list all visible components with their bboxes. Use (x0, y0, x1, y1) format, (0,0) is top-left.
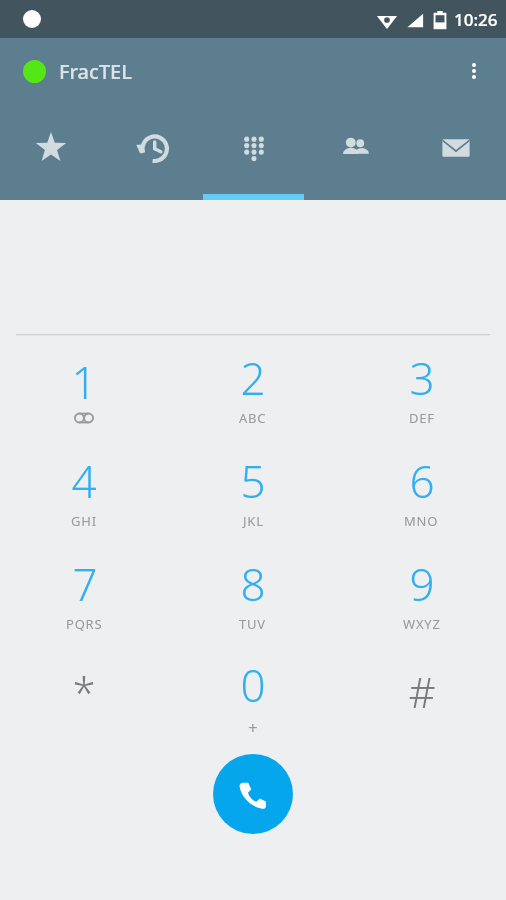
button[interactable]: 3 (337, 336, 506, 439)
staticText: 7 (72, 554, 98, 614)
button[interactable]: 0 (168, 645, 337, 748)
button[interactable]: 8 (168, 542, 337, 645)
button[interactable]: 5 (168, 439, 337, 542)
button[interactable]: Recents (102, 104, 203, 200)
button[interactable]: 7 (0, 542, 168, 645)
staticText: 6 (409, 451, 435, 511)
staticText: ABC (239, 409, 267, 427)
button[interactable]: 2 (168, 336, 337, 439)
button[interactable]: More options (450, 47, 498, 95)
button[interactable]: Contacts (304, 104, 405, 200)
staticText: 1 (71, 352, 97, 412)
button[interactable]: 1 (0, 336, 168, 439)
staticText: 4 (71, 451, 97, 511)
button[interactable]: 4 (0, 439, 168, 542)
button[interactable]: Voicemail (405, 104, 506, 200)
button[interactable]: 6 (337, 439, 506, 542)
staticText: 8 (240, 554, 266, 614)
staticText: 2 (240, 348, 266, 408)
staticText: JKL (243, 512, 264, 530)
staticText: TUV (239, 615, 266, 633)
staticText: DEF (409, 409, 435, 427)
staticText: 9 (409, 554, 435, 614)
staticText: 3 (409, 348, 435, 408)
staticText: MNO (404, 512, 439, 530)
staticText: PQRS (66, 615, 103, 633)
staticText: 5 (240, 451, 266, 511)
button[interactable]: # (337, 645, 506, 748)
button[interactable]: * (0, 645, 168, 748)
staticText: * (72, 663, 96, 720)
button[interactable]: Call (213, 754, 293, 834)
staticText: FracTEL (59, 58, 132, 85)
staticText: 10:26 (454, 8, 498, 31)
button[interactable]: Dialpad (203, 104, 304, 200)
button[interactable]: Favorites (0, 104, 102, 200)
staticText: GHI (71, 512, 97, 530)
staticText: # (408, 663, 436, 720)
staticText: 0 (240, 655, 266, 715)
staticText: WXYZ (403, 615, 441, 633)
button[interactable]: 9 (337, 542, 506, 645)
staticText: + (248, 716, 259, 739)
